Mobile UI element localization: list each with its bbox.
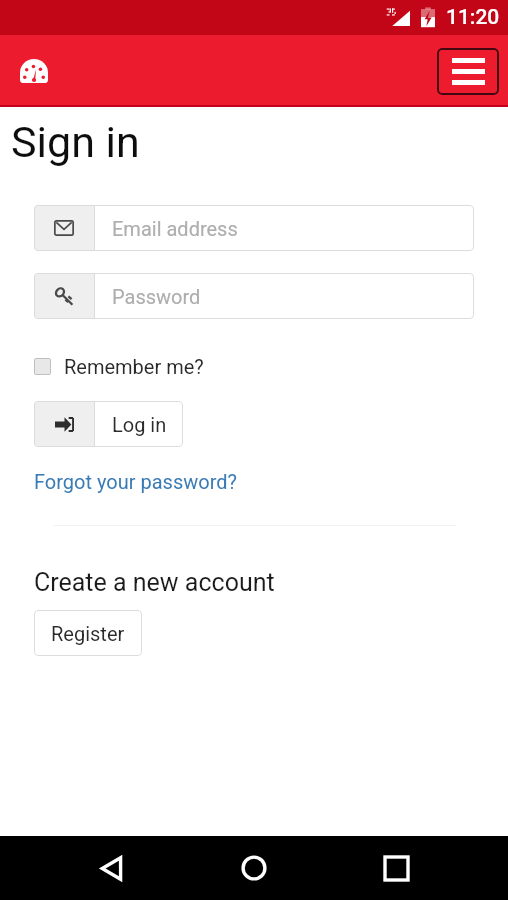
staticText: Remember me?	[64, 355, 204, 378]
staticText: Sign in	[11, 117, 140, 167]
button[interactable]: Password	[34, 273, 474, 319]
staticText: Log in	[112, 413, 167, 436]
staticText: Email address	[112, 217, 238, 240]
button[interactable]: Register	[34, 610, 142, 656]
staticText: Password	[112, 285, 201, 308]
button[interactable]: Dashboard	[13, 50, 55, 92]
button[interactable]: Email address	[34, 205, 474, 251]
button[interactable]: Log in	[34, 401, 183, 447]
button[interactable]: Forgot your password?	[34, 470, 237, 493]
staticText: Create a new account	[34, 568, 275, 597]
button[interactable]: Back	[82, 838, 142, 898]
button[interactable]: Remember me?	[34, 352, 204, 380]
button[interactable]: Home	[224, 838, 284, 898]
staticText: 11:20	[446, 5, 500, 30]
staticText: Register	[51, 622, 125, 645]
button[interactable]: Menu	[437, 48, 499, 95]
button[interactable]: Recent apps	[366, 838, 426, 898]
